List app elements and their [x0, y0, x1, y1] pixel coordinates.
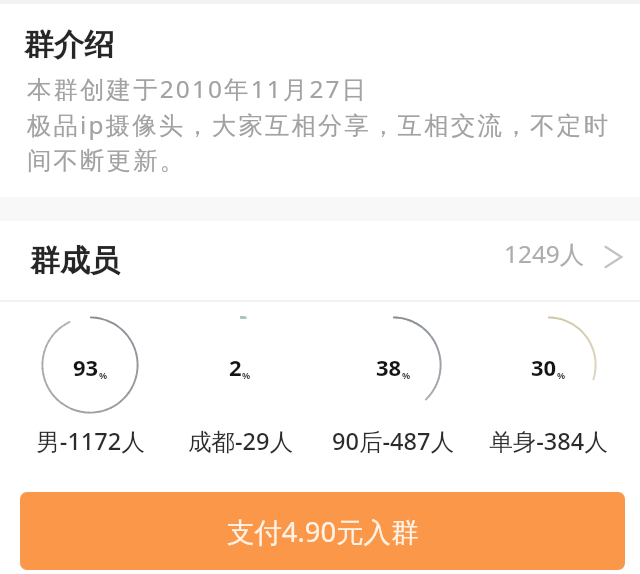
staticText: 单身-384人 — [489, 425, 608, 457]
staticText: 男-1172人 — [36, 425, 145, 457]
staticText: 90后-487人 — [332, 425, 454, 457]
staticText: 支付4.90元入群 — [227, 513, 419, 550]
staticText: 群成员 — [30, 242, 120, 280]
staticText: 本群创建于2010年11月27日 极品ip摄像头，大家互相分享，互相交流，不定时… — [27, 72, 610, 176]
staticText: 2 — [229, 352, 242, 382]
other: 查看群成员 — [598, 242, 628, 272]
staticText: % — [242, 369, 251, 381]
staticText: 1249人 — [504, 237, 585, 270]
staticText: % — [99, 369, 108, 381]
staticText: 群介绍 — [24, 26, 114, 64]
button[interactable]: 群成员 — [0, 221, 640, 299]
staticText: % — [402, 369, 411, 381]
staticText: 30 — [531, 352, 557, 382]
staticText: 成都-29人 — [188, 425, 293, 457]
button[interactable]: 93 — [14, 310, 166, 460]
staticText: 93 — [73, 352, 99, 382]
button[interactable]: 38 — [317, 310, 469, 460]
button[interactable]: 2 — [164, 310, 316, 460]
staticText: 38 — [376, 352, 402, 382]
button[interactable]: 支付4.90元入群 — [20, 492, 625, 570]
button[interactable]: 30 — [472, 310, 624, 460]
staticText: % — [557, 369, 566, 381]
